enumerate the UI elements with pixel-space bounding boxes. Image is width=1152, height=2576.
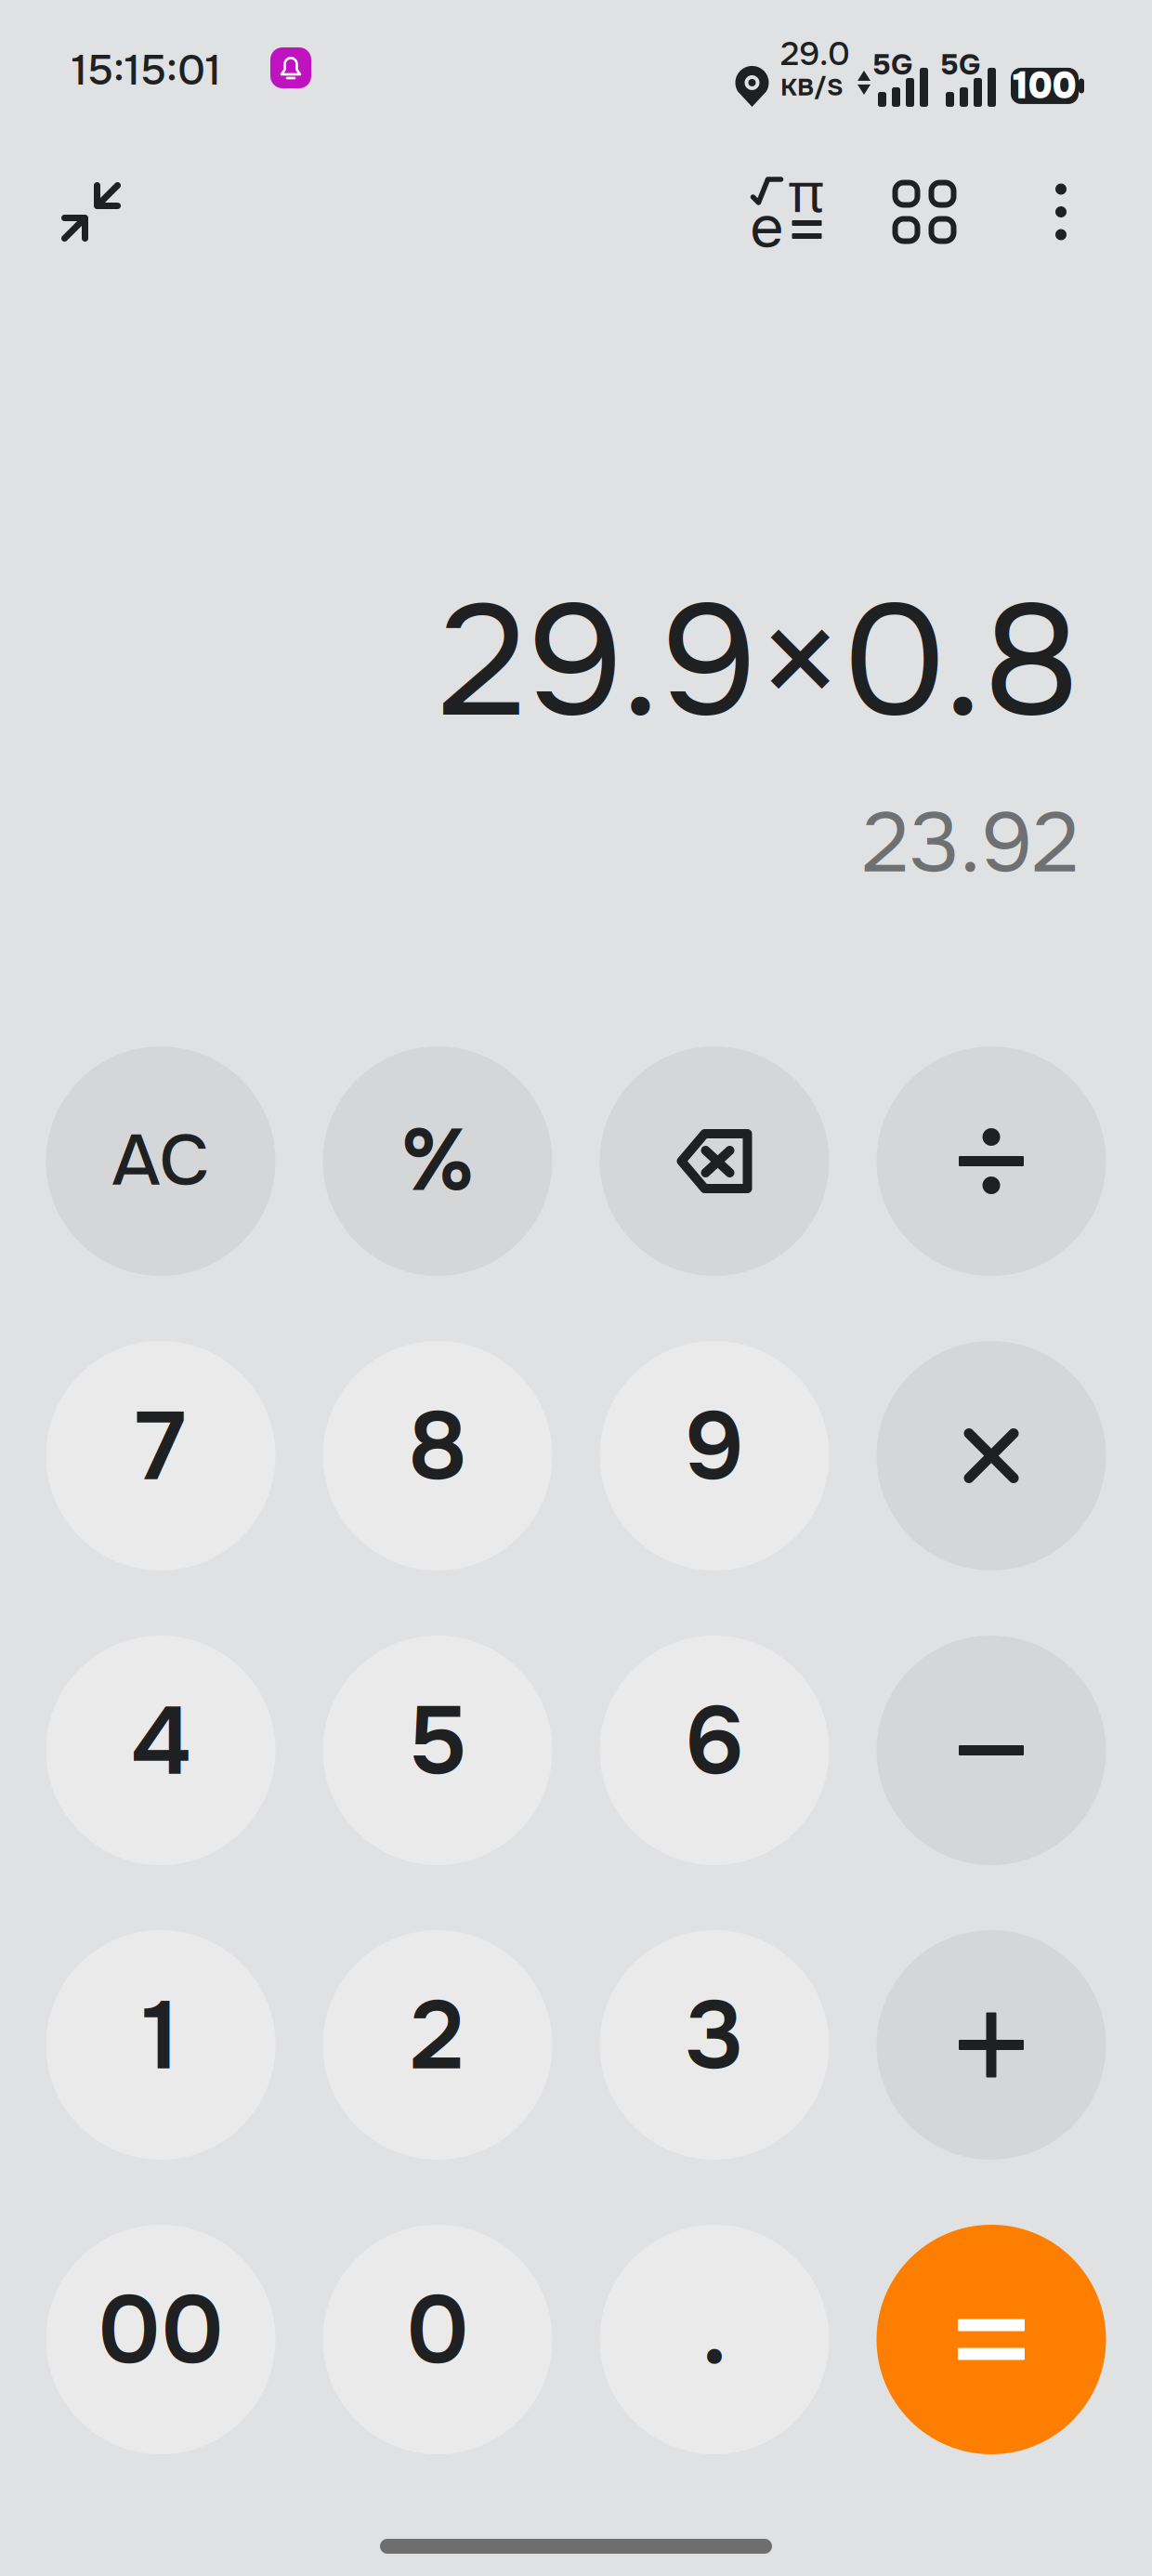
staticText: 5G — [872, 46, 912, 84]
staticText: 7 — [137, 1387, 185, 1508]
button[interactable]: 2 — [323, 1930, 552, 2160]
staticText: 23.92 — [862, 791, 1080, 897]
button[interactable]: % — [323, 1046, 552, 1276]
staticText: 5 — [408, 1681, 467, 1803]
button[interactable]: 0 — [323, 2225, 552, 2454]
button[interactable]: 8 — [323, 1341, 552, 1571]
button[interactable]: More options — [1024, 156, 1098, 268]
staticText: 00 — [98, 2270, 224, 2392]
button[interactable]: Divide — [877, 1046, 1106, 1276]
staticText: 6 — [685, 1681, 744, 1803]
staticText: 1 — [143, 1976, 179, 2097]
button[interactable]: 9 — [600, 1341, 829, 1571]
button[interactable]: 3 — [600, 1930, 829, 2160]
button[interactable]: 4 — [46, 1636, 275, 1865]
staticText: 9 — [685, 1387, 744, 1508]
staticText: e — [750, 190, 784, 266]
staticText: 29.0 — [780, 33, 850, 75]
staticText: 29.9×0.8 — [439, 563, 1080, 762]
button[interactable]: Keypad layout — [869, 156, 980, 268]
staticText: 4 — [131, 1681, 191, 1803]
button[interactable]: 00 — [46, 2225, 275, 2454]
staticText: 2 — [411, 1976, 465, 2097]
button[interactable]: 7 — [46, 1341, 275, 1571]
button[interactable]: Equals — [877, 2225, 1106, 2454]
button[interactable]: Minus — [877, 1636, 1106, 1865]
button[interactable]: Collapse — [31, 156, 151, 268]
staticText: 100 — [1013, 62, 1076, 110]
staticText: 8 — [408, 1387, 467, 1508]
staticText: 15:15:01 — [72, 44, 221, 97]
button[interactable]: Plus — [877, 1930, 1106, 2160]
button[interactable]: 6 — [600, 1636, 829, 1865]
button[interactable]: Multiply — [877, 1341, 1106, 1571]
button[interactable]: 5 — [323, 1636, 552, 1865]
button[interactable]: 1 — [46, 1930, 275, 2160]
staticText: AC — [112, 1116, 209, 1206]
staticText: % — [400, 1106, 475, 1216]
button[interactable]: Backspace — [600, 1046, 829, 1276]
button[interactable]: AC — [46, 1046, 275, 1276]
button[interactable]: . — [600, 2225, 829, 2454]
staticText: . — [701, 2270, 727, 2392]
staticText: KB/S — [780, 71, 844, 103]
staticText: 0 — [406, 2270, 469, 2392]
staticText: π — [788, 153, 824, 228]
staticText: 3 — [686, 1976, 743, 2097]
staticText: 5G — [940, 46, 980, 84]
button[interactable]: Scientific mode — [731, 156, 843, 268]
